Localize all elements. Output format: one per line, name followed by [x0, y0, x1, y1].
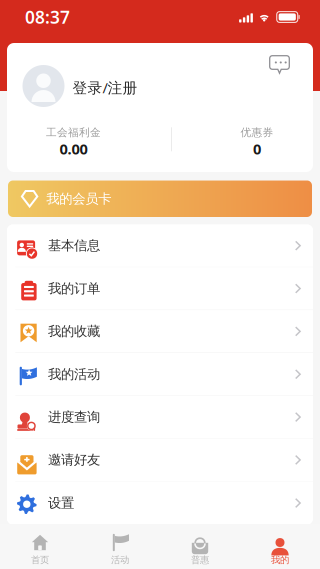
button[interactable]: 登录/注册 [22, 65, 137, 107]
button[interactable]: 设置 [7, 482, 313, 524]
staticText: 我的会员卡 [46, 191, 111, 207]
staticText: 工会福利金 [46, 126, 101, 139]
staticText: 优惠券 [240, 126, 273, 139]
button[interactable]: Messages [269, 55, 290, 73]
staticText: 邀请好友 [48, 452, 100, 468]
staticText: 0 [253, 139, 261, 159]
button[interactable]: 普惠 [160, 523, 240, 569]
button[interactable]: 邀请好友 [7, 439, 313, 482]
staticText: 0.00 [59, 139, 87, 159]
staticText: 我的活动 [48, 366, 100, 382]
staticText: 基本信息 [48, 237, 100, 254]
staticText: 活动 [111, 554, 129, 566]
button[interactable]: 活动 [80, 523, 160, 569]
button[interactable]: 我的收藏 [7, 310, 313, 353]
button[interactable]: 优惠券 [190, 126, 320, 159]
staticText: 08:37 [25, 5, 70, 28]
staticText: 普惠 [191, 554, 209, 566]
button[interactable]: 我的订单 [7, 267, 313, 310]
button[interactable]: 我的会员卡 [8, 180, 312, 217]
staticText: 我的收藏 [48, 323, 100, 340]
button[interactable]: 我的 [240, 523, 320, 569]
button[interactable]: 基本信息 [7, 224, 313, 267]
button[interactable]: 我的活动 [7, 353, 313, 396]
staticText: 我的订单 [48, 280, 100, 297]
staticText: 登录/注册 [72, 78, 137, 97]
staticText: 进度查询 [48, 409, 100, 425]
button[interactable]: 首页 [0, 523, 80, 569]
button[interactable]: 进度查询 [7, 396, 313, 439]
staticText: 我的 [271, 554, 289, 566]
button[interactable]: 工会福利金 [7, 126, 140, 159]
staticText: 设置 [48, 495, 74, 511]
staticText: 首页 [31, 554, 49, 566]
